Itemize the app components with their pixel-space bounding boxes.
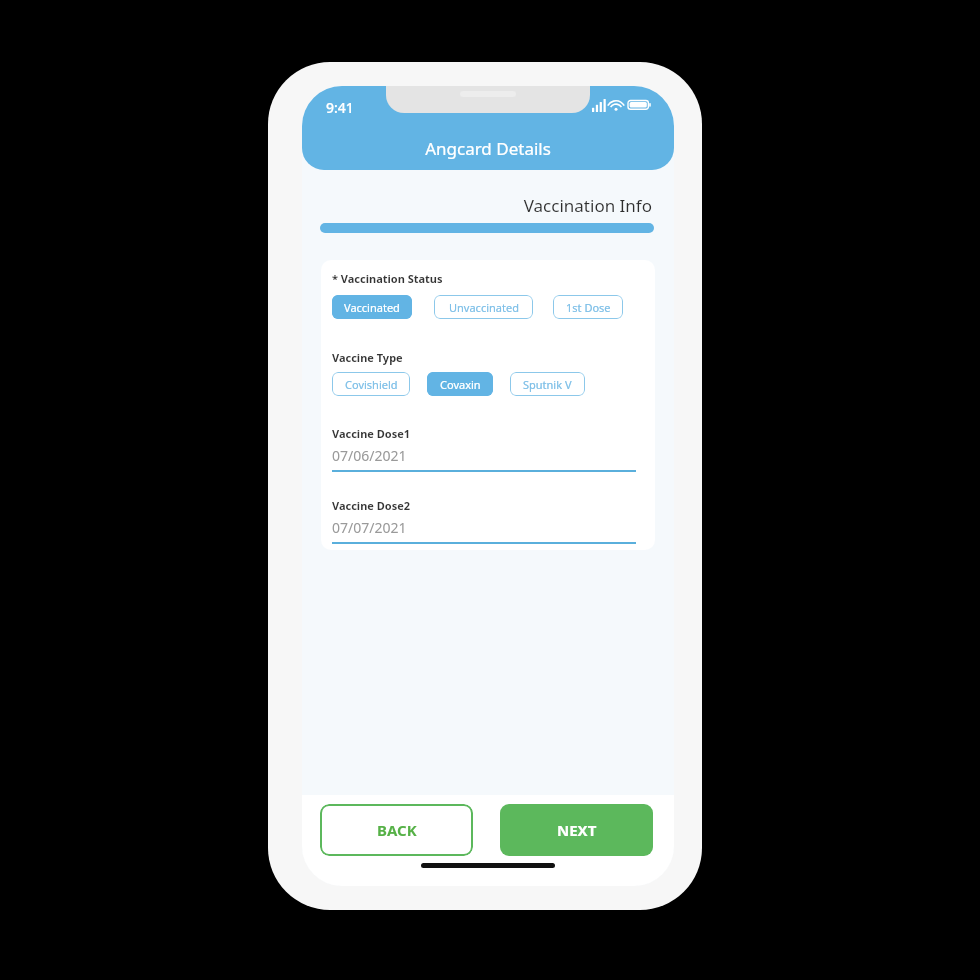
staticText: BACK bbox=[377, 820, 417, 840]
staticText: 07/06/2021 bbox=[332, 446, 407, 465]
staticText: NEXT bbox=[557, 820, 597, 840]
staticText: Sputnik V bbox=[523, 377, 572, 392]
staticText: Angcard Details bbox=[302, 137, 674, 160]
button[interactable]: Unvaccinated bbox=[434, 295, 533, 319]
staticText: 07/07/2021 bbox=[332, 518, 407, 537]
staticText: * Vaccination Status bbox=[332, 271, 443, 286]
button[interactable]: 07/07/2021 bbox=[332, 518, 636, 544]
staticText: 1st Dose bbox=[566, 300, 611, 315]
button[interactable]: BACK bbox=[320, 804, 473, 856]
button[interactable]: 07/06/2021 bbox=[332, 446, 636, 472]
button[interactable]: 1st Dose bbox=[553, 295, 623, 319]
staticText: Vaccine Dose1 bbox=[332, 426, 411, 441]
button[interactable]: Vaccinated bbox=[332, 295, 412, 319]
staticText: Vaccine Type bbox=[332, 350, 403, 365]
staticText: 9:41 bbox=[326, 98, 354, 117]
staticText: Vaccine Dose2 bbox=[332, 498, 411, 513]
button[interactable]: Covaxin bbox=[427, 372, 493, 396]
button[interactable]: Sputnik V bbox=[510, 372, 585, 396]
staticText: Vaccination Info bbox=[302, 194, 652, 217]
button[interactable]: NEXT bbox=[500, 804, 653, 856]
staticText: Vaccinated bbox=[344, 300, 400, 315]
staticText: Unvaccinated bbox=[449, 300, 519, 315]
button[interactable]: Covishield bbox=[332, 372, 410, 396]
staticText: Covaxin bbox=[440, 377, 481, 392]
staticText: Covishield bbox=[345, 377, 398, 392]
